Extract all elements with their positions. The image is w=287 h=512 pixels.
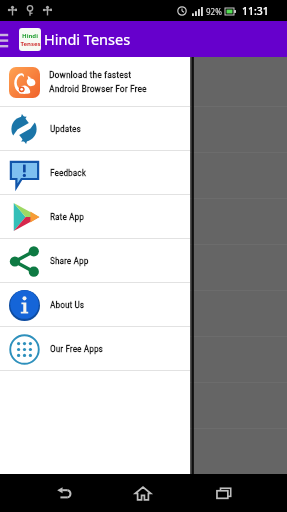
button[interactable]: Back [44, 474, 84, 512]
staticText: 11:31 [242, 4, 269, 18]
button[interactable]: Open navigation drawer [0, 29, 10, 49]
staticText: Hindi Tenses [44, 29, 131, 49]
button[interactable]: About Us [0, 283, 190, 327]
staticText: Share App [50, 255, 89, 266]
button[interactable]: Download the fastest [0, 57, 190, 107]
staticText: Android Browser For Free [49, 83, 147, 94]
button[interactable]: Rate App [0, 195, 190, 239]
button[interactable]: Our Free Apps [0, 327, 190, 371]
button[interactable]: Share App [0, 239, 190, 283]
staticText: Our Free Apps [50, 343, 103, 354]
staticText: Download the fastest [49, 69, 132, 80]
staticText: 92% [206, 6, 222, 17]
button[interactable]: Feedback [0, 151, 190, 195]
staticText: Updates [50, 123, 81, 134]
button[interactable]: Updates [0, 107, 190, 151]
staticText: Hindi [22, 32, 38, 40]
button[interactable]: Home [123, 474, 163, 512]
staticText: Feedback [50, 167, 86, 178]
staticText: Tenses [20, 40, 41, 48]
staticText: Rate App [50, 211, 84, 222]
button[interactable]: Recent apps [204, 474, 244, 512]
staticText: About Us [50, 299, 85, 310]
